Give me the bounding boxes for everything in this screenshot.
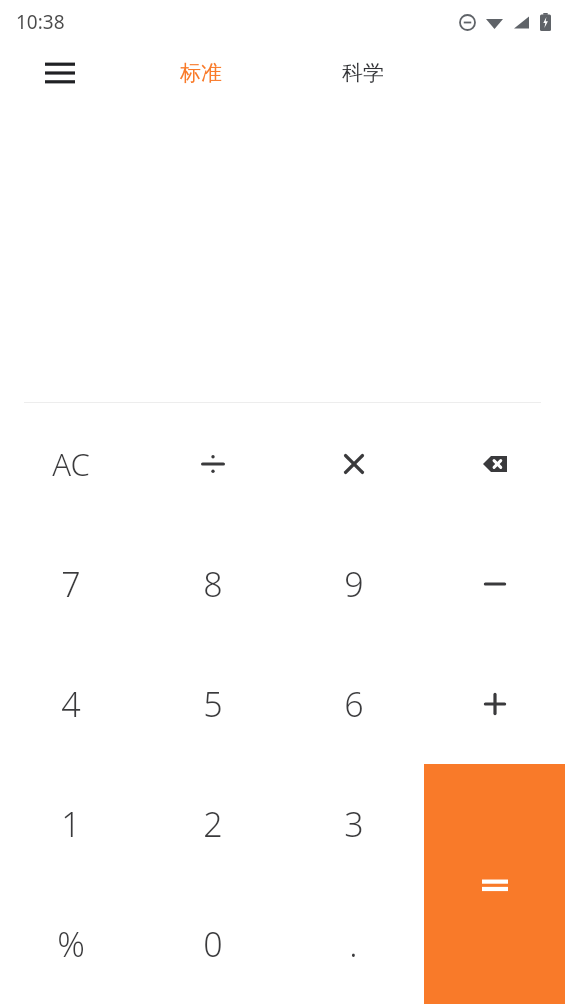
button[interactable]: Plus: [424, 644, 565, 764]
button[interactable]: 2: [142, 764, 283, 884]
staticText: 标准: [180, 60, 222, 86]
staticText: 3: [344, 801, 364, 847]
staticText: 5: [203, 681, 223, 727]
button[interactable]: 5: [142, 644, 283, 764]
button[interactable]: 标准: [160, 44, 242, 102]
staticText: 9: [344, 561, 364, 607]
button[interactable]: 4: [0, 644, 142, 764]
button[interactable]: Backspace: [424, 403, 565, 524]
button[interactable]: Multiply: [283, 403, 424, 524]
button[interactable]: Menu: [40, 53, 80, 93]
button[interactable]: 0: [142, 884, 283, 1004]
button[interactable]: 科学: [322, 44, 404, 102]
button[interactable]: 9: [283, 524, 424, 644]
staticText: .: [349, 921, 358, 967]
staticText: 2: [203, 801, 223, 847]
button[interactable]: 8: [142, 524, 283, 644]
staticText: 10:38: [16, 9, 65, 35]
button[interactable]: AC: [0, 403, 142, 524]
staticText: 1: [61, 801, 81, 847]
button[interactable]: 7: [0, 524, 142, 644]
button[interactable]: Minus: [424, 524, 565, 644]
button[interactable]: Divide: [142, 403, 283, 524]
button[interactable]: Equals: [424, 764, 565, 1004]
button[interactable]: 3: [283, 764, 424, 884]
staticText: 8: [203, 561, 223, 607]
staticText: 4: [61, 681, 81, 727]
staticText: 6: [344, 681, 364, 727]
staticText: 科学: [342, 60, 384, 86]
button[interactable]: 1: [0, 764, 142, 884]
staticText: AC: [52, 443, 90, 485]
button[interactable]: 6: [283, 644, 424, 764]
staticText: 0: [203, 921, 223, 967]
button[interactable]: .: [283, 884, 424, 1004]
staticText: %: [57, 921, 85, 967]
staticText: 7: [61, 561, 81, 607]
button[interactable]: %: [0, 884, 142, 1004]
